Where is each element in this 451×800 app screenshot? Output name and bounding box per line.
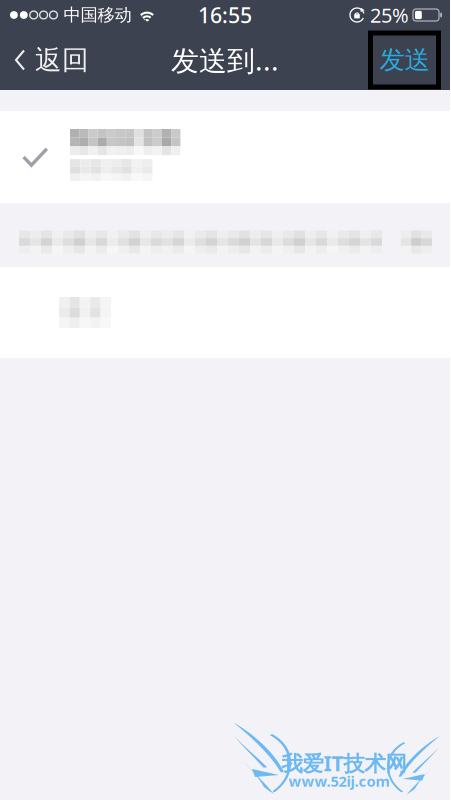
button[interactable] bbox=[0, 111, 450, 203]
staticText: 返回 bbox=[35, 44, 89, 76]
button[interactable]: 返回 bbox=[0, 30, 101, 90]
staticText: www.52ij.com bbox=[288, 771, 389, 791]
button[interactable] bbox=[0, 267, 450, 358]
button[interactable]: 发送 bbox=[368, 30, 441, 89]
staticText: 我爱IT技术网 bbox=[281, 749, 406, 777]
staticText: 中国移动 bbox=[63, 4, 131, 26]
staticText: 25% bbox=[370, 2, 409, 28]
staticText: 16:55 bbox=[198, 1, 252, 29]
staticText: 发送到... bbox=[171, 41, 279, 79]
staticText: 发送 bbox=[379, 44, 429, 75]
